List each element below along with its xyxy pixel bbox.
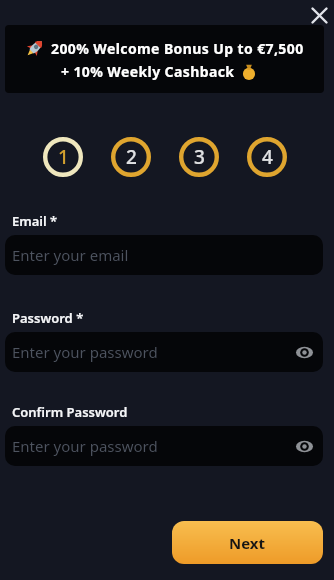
staticText: + 10% Weekly Cashback — [61, 62, 235, 81]
staticText: Email * — [12, 212, 58, 229]
button[interactable]: 3 — [179, 137, 219, 177]
button[interactable]: 2 — [111, 137, 151, 177]
button[interactable]: Enter your password — [5, 332, 323, 372]
button[interactable]: Next — [172, 521, 323, 564]
staticText: Confirm Password — [12, 403, 128, 420]
staticText: Enter your password — [12, 436, 158, 456]
button[interactable]: 1 — [43, 137, 83, 177]
staticText: 3 — [194, 144, 205, 170]
staticText: Enter your password — [12, 342, 158, 362]
staticText: 1 — [58, 144, 69, 170]
button[interactable] — [309, 6, 330, 25]
button[interactable]: Enter your password — [5, 426, 323, 466]
staticText: 200% Welcome Bonus Up to €7,500 — [51, 39, 304, 58]
staticText: 2 — [126, 144, 137, 170]
staticText: 4 — [262, 144, 273, 170]
staticText: Next — [229, 533, 266, 553]
staticText: Password * — [12, 309, 84, 326]
button[interactable]: Enter your email — [5, 235, 323, 275]
staticText: Enter your email — [12, 245, 129, 265]
button[interactable]: 4 — [247, 137, 287, 177]
